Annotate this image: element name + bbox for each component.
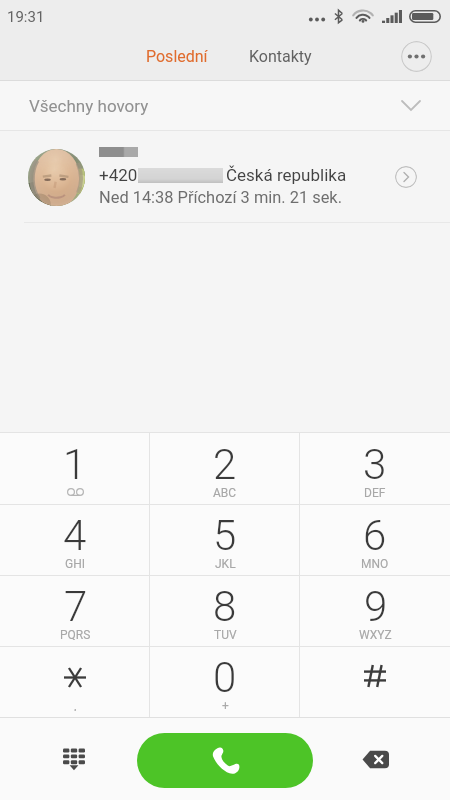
- staticText: Česká republika: [226, 165, 347, 185]
- button[interactable]: 6: [300, 505, 450, 575]
- button[interactable]: ,: [0, 647, 150, 717]
- staticText: +420: [99, 165, 138, 185]
- staticText: Kontakty: [249, 47, 312, 66]
- staticText: 0: [213, 653, 237, 697]
- staticText: GHI: [65, 557, 85, 569]
- staticText: DEF: [364, 486, 386, 498]
- staticText: Ned 14:38 Příchozí 3 min. 21 sek.: [99, 188, 342, 207]
- button[interactable]: Backspace: [354, 738, 396, 780]
- staticText: 6: [363, 511, 387, 555]
- staticText: MNO: [361, 557, 389, 569]
- staticText: 8: [213, 582, 237, 626]
- button[interactable]: Kontakty: [239, 39, 322, 74]
- staticText: 1: [63, 440, 87, 484]
- staticText: 7: [64, 582, 88, 626]
- staticText: JKL: [215, 557, 236, 569]
- button[interactable]: Call details: [395, 166, 417, 188]
- button[interactable]: 2: [150, 433, 300, 504]
- staticText: TUV: [214, 628, 237, 640]
- staticText: ABC: [213, 486, 237, 498]
- button[interactable]: Všechny hovory: [0, 81, 450, 130]
- button[interactable]: 3: [300, 433, 450, 504]
- staticText: 9: [364, 582, 388, 626]
- staticText: +: [222, 699, 229, 711]
- button[interactable]: More options: [401, 41, 432, 72]
- staticText: 4: [63, 511, 87, 555]
- button[interactable]: 7: [0, 576, 150, 646]
- button[interactable]: Call: [137, 733, 313, 788]
- staticText: ,: [74, 699, 77, 711]
- button[interactable]: 9: [300, 576, 450, 646]
- staticText: 19:31: [7, 8, 45, 26]
- staticText: 3: [363, 440, 387, 484]
- button[interactable]: +420: [0, 131, 450, 223]
- button[interactable]: 0: [150, 647, 300, 717]
- button[interactable]: Hide keypad: [53, 738, 95, 780]
- button[interactable]: 5: [150, 505, 300, 575]
- button[interactable]: [300, 647, 450, 717]
- button[interactable]: 8: [150, 576, 300, 646]
- staticText: PQRS: [60, 628, 91, 640]
- staticText: 5: [213, 511, 237, 555]
- button[interactable]: Poslední: [136, 39, 218, 74]
- button[interactable]: 1: [0, 433, 150, 504]
- staticText: Všechny hovory: [29, 96, 149, 116]
- staticText: Poslední: [146, 47, 208, 66]
- button[interactable]: 4: [0, 505, 150, 575]
- staticText: WXYZ: [359, 628, 392, 640]
- staticText: 2: [213, 440, 237, 484]
